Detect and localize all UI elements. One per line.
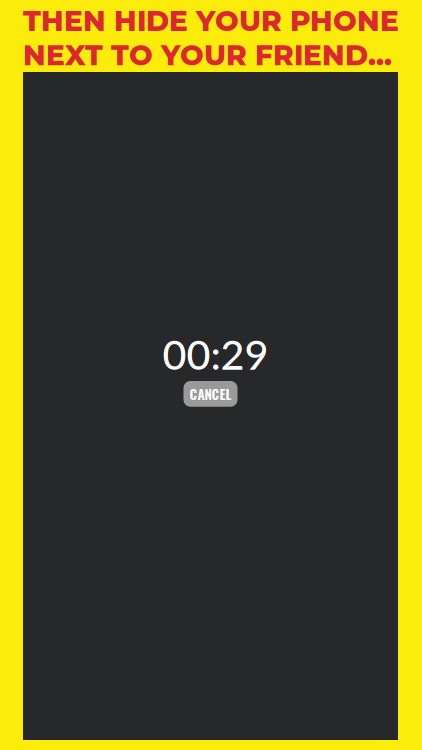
staticText: THEN HIDE YOUR PHONE	[23, 4, 399, 38]
staticText: CANCEL	[189, 384, 231, 404]
staticText: 00:29	[162, 329, 268, 379]
staticText: NEXT TO YOUR FRIEND...	[23, 38, 392, 72]
button[interactable]: CANCEL	[183, 381, 237, 407]
